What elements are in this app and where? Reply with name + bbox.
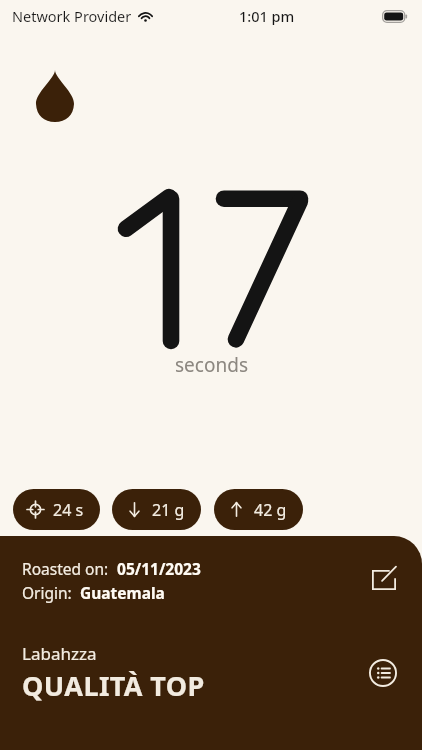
staticText: Roasted on: bbox=[22, 558, 113, 579]
staticText: Labahzza bbox=[22, 642, 97, 665]
button[interactable]: Coffee drop logo bbox=[36, 70, 74, 122]
staticText: Origin: bbox=[22, 582, 76, 603]
staticText: seconds bbox=[175, 352, 248, 378]
button[interactable]: Yield out bbox=[214, 489, 303, 530]
staticText: 21 g bbox=[152, 499, 185, 521]
button[interactable]: Dose in bbox=[112, 489, 201, 530]
staticText: 05/11/2023 bbox=[113, 558, 201, 579]
staticText: Network Provider bbox=[12, 6, 132, 26]
staticText: 1:01 pm bbox=[239, 6, 295, 26]
staticText: Guatemala bbox=[76, 582, 165, 603]
button[interactable]: Edit bean details bbox=[364, 558, 404, 598]
staticText: 24 s bbox=[53, 499, 84, 521]
button[interactable]: Target time bbox=[13, 489, 100, 530]
staticText: QUALITÀ TOP bbox=[22, 667, 205, 704]
button[interactable]: Bean list bbox=[362, 652, 404, 694]
staticText: 42 g bbox=[254, 499, 287, 521]
